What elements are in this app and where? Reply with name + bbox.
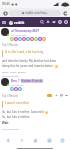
staticText: reddit.com/r/as... — [25, 11, 49, 15]
button[interactable]: Profile — [63, 19, 69, 25]
button[interactable]: Reddit home — [7, 19, 14, 26]
staticText: So, but I do it neither. — [2, 115, 30, 119]
staticText: reddit — [14, 20, 25, 25]
button[interactable]: Sort of course — [2, 127, 19, 130]
button[interactable]: Back — [2, 134, 14, 146]
button[interactable]: Avatar — [1, 78, 9, 86]
button[interactable]: Search — [39, 19, 45, 25]
button[interactable]: Home — [29, 134, 41, 146]
staticText: Top 3 Results — [2, 43, 19, 47]
staticText: Not collec — [11, 83, 23, 86]
button[interactable]: Menu — [0, 19, 7, 26]
button[interactable]: Award — [47, 94, 52, 97]
button[interactable]: Upvote — [54, 93, 59, 98]
button[interactable]: Reply Share Report — [2, 70, 26, 73]
staticText: It is, like I said, a bit too long — [5, 50, 44, 54]
button[interactable]: Tabs — [43, 134, 55, 146]
button[interactable]: Menu — [56, 134, 68, 146]
staticText: Bno_1 — [11, 79, 20, 83]
button[interactable]: Tabs — [2, 10, 8, 16]
button[interactable]: Refresh — [62, 10, 68, 16]
staticText: OP · 3 hr. ago — [11, 33, 27, 36]
button[interactable]: reddit.com/r/as... — [9, 10, 61, 16]
staticText: Hidden Friends — [21, 79, 43, 83]
button[interactable]: Forward — [15, 134, 27, 146]
staticText: Wait — [2, 121, 9, 125]
button[interactable]: More — [64, 93, 69, 98]
staticText: doing this for years and it works better — [2, 64, 54, 68]
button[interactable]: Sort of course — [2, 74, 19, 77]
staticText: I wasn't even that — [5, 101, 29, 105]
staticText: 09:45 — [2, 2, 10, 6]
button[interactable]: Create post — [57, 19, 63, 25]
button[interactable]: Chat — [51, 19, 57, 25]
staticText: and then the family. My brother has been — [2, 59, 57, 63]
button[interactable]: Avatar — [1, 28, 9, 36]
staticText: Top 3 Results — [2, 94, 19, 98]
button[interactable]: Comments — [59, 93, 64, 98]
staticText: u/Throwaway-8827 — [11, 29, 40, 33]
staticText: So, but I do it neither. I wound it — [2, 110, 44, 114]
button[interactable]: Notifications — [45, 19, 51, 25]
